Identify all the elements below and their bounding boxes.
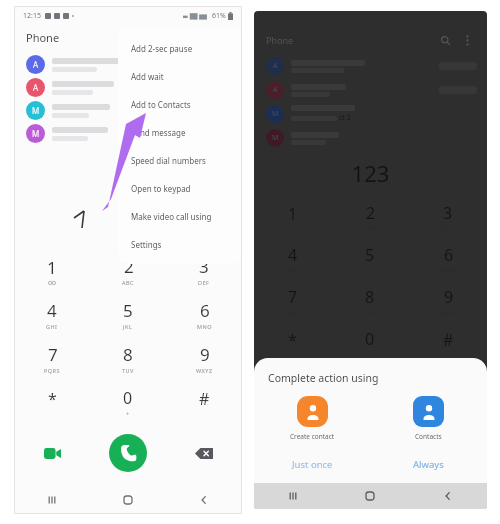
staticText: 1 — [288, 203, 298, 225]
button[interactable]: Recents — [254, 483, 331, 509]
button[interactable]: Make video call using — [118, 202, 242, 230]
staticText: TUV — [122, 367, 134, 374]
staticText: Complete action using — [268, 371, 379, 385]
button[interactable]: # — [166, 380, 242, 424]
button[interactable]: M — [26, 122, 242, 145]
staticText: 0 — [365, 328, 375, 350]
staticText: 9 — [200, 343, 210, 366]
button[interactable]: A — [26, 53, 242, 76]
staticText: * — [48, 388, 57, 410]
staticText: WXYZ — [196, 367, 213, 374]
button[interactable]: Add to Contacts — [118, 90, 242, 118]
button[interactable]: Home — [90, 486, 166, 514]
button[interactable]: 2 — [90, 248, 166, 292]
staticText: M — [272, 109, 279, 119]
button[interactable]: # — [409, 322, 487, 364]
button[interactable]: Recents — [14, 486, 90, 514]
button[interactable]: A — [266, 78, 487, 102]
button[interactable]: 3 — [166, 248, 242, 292]
button[interactable]: Add 2-sec pause — [118, 34, 242, 62]
button[interactable]: M — [266, 126, 487, 150]
staticText: JKL — [123, 323, 133, 330]
button[interactable]: More options — [459, 32, 475, 48]
staticText: 4 — [288, 244, 298, 266]
button[interactable]: M — [26, 99, 242, 122]
staticText: 4 — [47, 299, 57, 322]
button[interactable]: Just once — [254, 451, 370, 477]
staticText: Phone — [266, 34, 294, 46]
button[interactable]: Video call — [14, 428, 90, 478]
staticText: Make video call using — [131, 211, 212, 222]
button[interactable]: Speed dial numbers — [118, 146, 242, 174]
button[interactable]: A — [26, 76, 242, 99]
button[interactable]: 7 — [14, 336, 90, 380]
staticText: 3 — [443, 202, 453, 224]
staticText: A — [273, 85, 278, 95]
button[interactable]: Search — [437, 32, 453, 48]
button[interactable]: 5 — [90, 292, 166, 336]
button[interactable]: Home — [331, 483, 409, 509]
button[interactable]: Contacts — [370, 396, 487, 441]
button[interactable]: Call — [90, 428, 166, 478]
staticText: 5 — [123, 299, 133, 322]
button[interactable]: * — [254, 322, 331, 364]
button[interactable]: * — [14, 380, 90, 424]
staticText: Create contact — [290, 432, 335, 441]
button[interactable]: 6 — [166, 292, 242, 336]
button[interactable]: 4 — [14, 292, 90, 336]
staticText: GHI — [46, 323, 58, 330]
button[interactable]: Send message — [118, 118, 242, 146]
staticText: 5 — [365, 244, 375, 266]
staticText: Contacts — [415, 432, 442, 441]
staticText: Open to keypad — [131, 183, 191, 194]
button[interactable]: Open to keypad — [118, 174, 242, 202]
staticText: 8 — [123, 343, 133, 366]
staticText: Add wait — [131, 71, 164, 82]
staticText: 9 — [444, 286, 454, 308]
staticText: 8 — [365, 286, 375, 308]
button[interactable]: 8 — [90, 336, 166, 380]
button[interactable]: M — [266, 102, 487, 126]
staticText: 6 — [444, 244, 454, 266]
button[interactable]: Always — [370, 451, 487, 477]
button[interactable]: Backspace — [166, 428, 242, 478]
button[interactable]: 0 — [331, 322, 409, 364]
button[interactable]: 1 — [14, 248, 90, 292]
staticText: Send message — [131, 127, 186, 138]
staticText: ct 2 — [339, 113, 351, 123]
staticText: MNO — [197, 323, 212, 330]
staticText: M — [272, 133, 279, 143]
staticText: # — [199, 388, 210, 410]
staticText: * — [288, 329, 297, 351]
button[interactable]: Create contact — [254, 396, 370, 441]
button[interactable]: A — [266, 54, 487, 78]
button[interactable]: 0 — [90, 380, 166, 424]
staticText: 12:15 — [23, 11, 41, 21]
staticText: A — [33, 59, 39, 70]
button[interactable]: Back — [409, 483, 487, 509]
staticText: 7 — [288, 286, 298, 308]
button[interactable]: Add wait — [118, 62, 242, 90]
button[interactable]: Settings — [118, 230, 242, 258]
button[interactable]: 9 — [166, 336, 242, 380]
staticText: Add to Contacts — [131, 99, 191, 110]
button[interactable]: Back — [166, 486, 242, 514]
staticText: Add 2-sec pause — [131, 43, 193, 54]
staticText: Speed dial numbers — [131, 155, 206, 166]
staticText: DEF — [198, 279, 210, 286]
